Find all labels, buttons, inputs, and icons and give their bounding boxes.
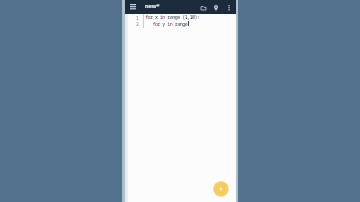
staticText: 1 (136, 15, 139, 21)
button[interactable] (198, 3, 208, 12)
staticText: for y in range (145, 21, 188, 28)
staticText: for x in range (1,10): (145, 14, 200, 21)
button[interactable] (211, 3, 221, 12)
staticText: 2 (136, 21, 139, 27)
button[interactable] (128, 2, 138, 11)
button[interactable] (213, 181, 229, 197)
staticText: new* (145, 2, 160, 9)
button[interactable] (224, 3, 233, 12)
